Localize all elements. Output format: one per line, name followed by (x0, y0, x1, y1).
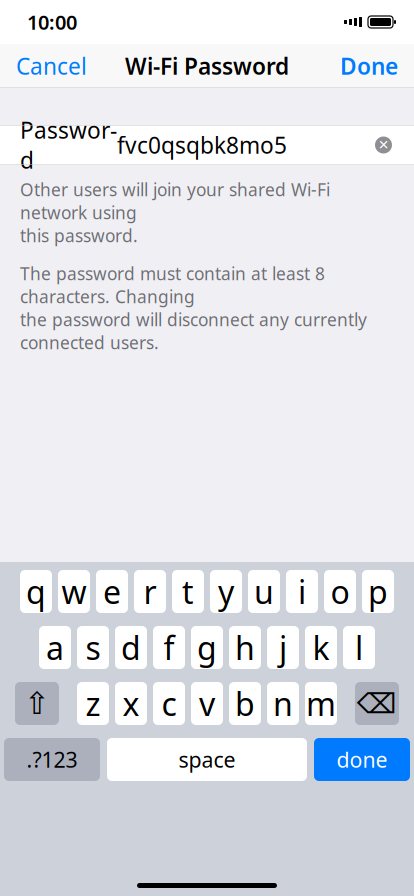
button[interactable]: Done (324, 44, 414, 88)
staticText: i (298, 570, 306, 613)
button[interactable]: .?123 (4, 738, 100, 781)
button[interactable]: c (153, 682, 185, 725)
button[interactable]: u (248, 570, 280, 613)
staticText: d (121, 626, 141, 669)
staticText: u (254, 570, 274, 613)
button[interactable]: Delete (355, 682, 399, 725)
button[interactable]: d (115, 626, 147, 669)
staticText: ⌫ (357, 688, 397, 719)
staticText: q (26, 570, 46, 613)
staticText: z (85, 682, 100, 725)
staticText: Other users will join your shared Wi-Fi … (20, 178, 330, 224)
staticText: m (306, 682, 336, 725)
staticText: y (218, 570, 234, 613)
staticText: w (61, 570, 86, 613)
button[interactable]: w (58, 570, 90, 613)
staticText: ✕ (378, 137, 389, 152)
button[interactable]: q (20, 570, 52, 613)
button[interactable]: s (77, 626, 109, 669)
staticText: b (235, 682, 255, 725)
staticText: l (355, 626, 363, 669)
staticText: n (273, 682, 293, 725)
staticText: ⇧ (24, 686, 50, 721)
staticText: x (122, 682, 139, 725)
staticText: t (182, 570, 194, 613)
staticText: .?123 (26, 745, 77, 774)
staticText: a (46, 626, 64, 669)
staticText: j (279, 626, 287, 669)
button[interactable]: v (191, 682, 223, 725)
staticText: o (330, 570, 349, 613)
button[interactable]: t (172, 570, 204, 613)
button[interactable]: b (229, 682, 261, 725)
button[interactable]: y (210, 570, 242, 613)
staticText: k (312, 626, 329, 669)
staticText: c (161, 682, 176, 725)
button[interactable]: i (286, 570, 318, 613)
staticText: done (336, 745, 387, 774)
staticText: the password will disconnect any current… (20, 308, 367, 354)
staticText: Cancel (16, 51, 87, 81)
staticText: Password (20, 115, 117, 175)
button[interactable]: e (96, 570, 128, 613)
staticText: space (178, 745, 235, 774)
staticText: v (199, 682, 215, 725)
button[interactable]: l (343, 626, 375, 669)
staticText: p (368, 570, 388, 613)
button[interactable]: Cancel (0, 44, 103, 88)
button[interactable]: space (107, 738, 307, 781)
staticText: s (85, 626, 100, 669)
staticText: g (197, 626, 217, 669)
staticText: this password. (20, 224, 138, 247)
staticText: e (103, 570, 121, 613)
staticText: h (235, 626, 255, 669)
staticText: f (163, 626, 174, 669)
button[interactable]: n (267, 682, 299, 725)
button[interactable]: a (39, 626, 71, 669)
button[interactable]: m (305, 682, 337, 725)
staticText: Wi-Fi Password (125, 51, 289, 81)
button[interactable]: r (134, 570, 166, 613)
button[interactable]: o (324, 570, 356, 613)
button[interactable]: f (153, 626, 185, 669)
button[interactable]: z (77, 682, 109, 725)
button[interactable]: k (305, 626, 337, 669)
button[interactable]: h (229, 626, 261, 669)
button[interactable]: Shift (15, 682, 59, 725)
button[interactable]: done (314, 738, 410, 781)
button[interactable]: p (362, 570, 394, 613)
staticText: fvc0qsqbk8mo5 (117, 130, 287, 160)
button[interactable]: j (267, 626, 299, 669)
staticText: The password must contain at least 8 cha… (20, 262, 325, 308)
staticText: Done (340, 51, 398, 81)
button[interactable]: x (115, 682, 147, 725)
staticText: 10:00 (27, 9, 77, 35)
button[interactable]: g (191, 626, 223, 669)
button[interactable]: Clear text (365, 125, 402, 165)
staticText: r (143, 570, 156, 613)
